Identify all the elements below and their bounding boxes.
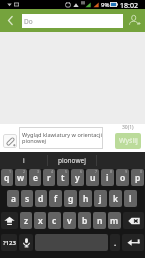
button[interactable]: c — [48, 212, 61, 229]
staticText: pionowej — [58, 156, 86, 165]
staticText: . — [114, 237, 117, 248]
staticText: j — [99, 193, 102, 205]
button[interactable]: . — [110, 234, 120, 251]
staticText: f — [54, 193, 58, 205]
button[interactable]: v — [63, 212, 76, 229]
button[interactable]: m — [108, 212, 121, 229]
staticText: l — [129, 193, 132, 205]
button[interactable]: s — [21, 190, 33, 207]
button[interactable]: Wygląd klawiatury w orientacji pionowej — [19, 127, 103, 149]
staticText: 9% — [101, 1, 110, 9]
staticText: i — [106, 172, 109, 184]
button[interactable]: Wyślij — [115, 133, 141, 149]
staticText: v — [67, 215, 72, 227]
staticText: 30(1) — [122, 124, 134, 131]
button[interactable]: Add recipient — [123, 9, 145, 32]
button[interactable]: ?123 — [1, 234, 17, 251]
button[interactable]: w — [15, 169, 27, 186]
button[interactable]: a — [7, 190, 19, 207]
staticText: c — [52, 215, 57, 227]
staticText: Wygląd klawiatury w orientacji pionowej — [22, 131, 102, 145]
button[interactable]: u — [86, 169, 99, 186]
staticText: 8 — [110, 169, 113, 174]
staticText: 4 — [51, 169, 54, 174]
staticText: h — [83, 193, 89, 205]
staticText: a — [11, 193, 16, 205]
staticText: i — [23, 156, 25, 165]
button[interactable]: Back — [0, 9, 21, 32]
staticText: o — [120, 172, 126, 184]
staticText: Do — [24, 17, 33, 26]
button[interactable]: pionowej — [48, 152, 96, 169]
staticText: t — [61, 172, 65, 184]
button[interactable]: b — [78, 212, 91, 229]
button[interactable]: j — [94, 190, 107, 207]
staticText: b — [82, 215, 88, 227]
staticText: 1 — [9, 169, 12, 174]
staticText: m — [110, 215, 119, 227]
button[interactable]: Enter — [122, 234, 144, 251]
button[interactable]: y — [71, 169, 84, 186]
staticText: k — [113, 193, 118, 205]
button[interactable]: x — [34, 212, 46, 229]
button[interactable]: l — [124, 190, 137, 207]
staticText: 0 — [140, 169, 143, 174]
staticText: g — [68, 193, 74, 205]
staticText: n — [97, 215, 103, 227]
button[interactable]: Do — [22, 14, 123, 28]
staticText: 18:02 — [120, 1, 138, 10]
staticText: ?123 — [3, 239, 16, 247]
button[interactable]: t — [57, 169, 69, 186]
button[interactable]: g — [64, 190, 77, 207]
button[interactable]: Attach — [3, 134, 17, 148]
staticText: e — [33, 172, 38, 184]
staticText: 7 — [95, 169, 98, 174]
staticText: p — [135, 172, 141, 184]
staticText: u — [90, 172, 96, 184]
staticText: y — [75, 172, 80, 184]
staticText: Wyślij — [119, 136, 138, 146]
button[interactable]: h — [79, 190, 92, 207]
staticText: 5 — [65, 169, 68, 174]
button[interactable]: k — [109, 190, 122, 207]
staticText: z — [24, 215, 29, 227]
staticText: 3 — [37, 169, 40, 174]
button[interactable]: f — [49, 190, 62, 207]
button[interactable]: i — [0, 152, 47, 169]
button[interactable]: Backspace — [123, 212, 144, 229]
staticText: d — [38, 193, 44, 205]
button[interactable]: z — [20, 212, 32, 229]
button[interactable]: n — [93, 212, 106, 229]
staticText: s — [25, 193, 30, 205]
button[interactable]: i — [101, 169, 114, 186]
button[interactable]: e — [29, 169, 41, 186]
staticText: 6 — [80, 169, 83, 174]
button[interactable]: p — [131, 169, 144, 186]
button[interactable]: o — [116, 169, 129, 186]
button[interactable]: r — [43, 169, 55, 186]
button[interactable]: q — [1, 169, 13, 186]
staticText: q — [4, 172, 10, 184]
staticText: 9 — [125, 169, 128, 174]
staticText: x — [38, 215, 43, 227]
staticText: 2 — [23, 169, 26, 174]
button[interactable]: d — [35, 190, 47, 207]
button[interactable]: Voice input — [19, 234, 33, 251]
button[interactable]: Shift — [1, 212, 18, 229]
staticText: w — [17, 172, 25, 184]
staticText: r — [47, 172, 51, 184]
